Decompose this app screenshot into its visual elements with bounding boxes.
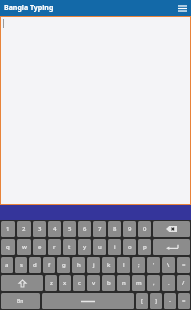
button[interactable]: u: [93, 239, 106, 255]
button[interactable]: j: [87, 257, 100, 273]
button[interactable]: 7: [93, 221, 106, 237]
staticText: e: [38, 243, 42, 251]
button[interactable]: ]: [150, 293, 162, 309]
staticText: =: [182, 261, 186, 269]
staticText: Bangla Typing: [4, 3, 54, 13]
button[interactable]: v: [87, 275, 100, 291]
button[interactable]: 9: [123, 221, 136, 237]
staticText: f: [48, 261, 51, 269]
button[interactable]: l: [117, 257, 130, 273]
button[interactable]: k: [102, 257, 115, 273]
staticText: x: [63, 279, 67, 287]
button[interactable]: -: [164, 293, 176, 309]
staticText: [: [141, 297, 143, 305]
button[interactable]: f: [43, 257, 55, 273]
staticText: 3: [38, 225, 42, 233]
staticText: y: [83, 243, 87, 251]
staticText: o: [128, 243, 132, 251]
staticText: w: [22, 243, 27, 251]
staticText: n: [122, 279, 126, 287]
staticText: \: [167, 261, 170, 269]
staticText: 2: [22, 225, 26, 233]
button[interactable]: =: [177, 257, 190, 273]
staticText: d: [33, 261, 37, 269]
button[interactable]: g: [57, 257, 70, 273]
button[interactable]: Backspace: [153, 221, 190, 237]
button[interactable]: Bn: [1, 293, 40, 309]
button[interactable]: a: [1, 257, 13, 273]
button[interactable]: 1: [1, 221, 15, 237]
button[interactable]: 5: [63, 221, 76, 237]
button[interactable]: 2: [17, 221, 31, 237]
button[interactable]: ;: [132, 257, 145, 273]
staticText: 8: [113, 225, 117, 233]
staticText: 4: [53, 225, 57, 233]
button[interactable]: 6: [78, 221, 91, 237]
staticText: 1: [6, 225, 10, 233]
staticText: ;: [138, 261, 140, 269]
staticText: v: [92, 279, 96, 287]
staticText: l: [123, 261, 125, 269]
button[interactable]: Menu: [178, 4, 187, 13]
staticText: b: [107, 279, 111, 287]
button[interactable]: Enter: [153, 239, 190, 255]
button[interactable]: w: [17, 239, 31, 255]
staticText: Bn: [17, 298, 24, 305]
button[interactable]: s: [15, 257, 27, 273]
staticText: k: [107, 261, 111, 269]
button[interactable]: /: [177, 275, 190, 291]
staticText: i: [114, 243, 116, 251]
button[interactable]: h: [72, 257, 85, 273]
button[interactable]: y: [78, 239, 91, 255]
button[interactable]: p: [138, 239, 151, 255]
button[interactable]: c: [73, 275, 85, 291]
staticText: j: [93, 261, 95, 269]
staticText: 5: [68, 225, 72, 233]
staticText: .: [168, 279, 170, 287]
button[interactable]: [0, 16, 191, 205]
button[interactable]: ,: [147, 275, 160, 291]
button[interactable]: q: [1, 239, 15, 255]
button[interactable]: 4: [48, 221, 61, 237]
button[interactable]: n: [117, 275, 130, 291]
staticText: s: [20, 261, 23, 269]
button[interactable]: z: [45, 275, 57, 291]
staticText: z: [50, 279, 53, 287]
button[interactable]: o: [123, 239, 136, 255]
button[interactable]: =: [178, 293, 190, 309]
staticText: -: [169, 297, 171, 305]
button[interactable]: .: [162, 275, 175, 291]
button[interactable]: 3: [33, 221, 46, 237]
staticText: r: [53, 243, 56, 251]
button[interactable]: x: [59, 275, 71, 291]
button[interactable]: \: [162, 257, 175, 273]
staticText: 0: [143, 225, 147, 233]
staticText: p: [143, 243, 147, 251]
button[interactable]: b: [102, 275, 115, 291]
button[interactable]: [: [136, 293, 148, 309]
staticText: g: [62, 261, 66, 269]
staticText: m: [136, 279, 142, 287]
staticText: 9: [128, 225, 132, 233]
staticText: q: [6, 243, 10, 251]
button[interactable]: 8: [108, 221, 121, 237]
button[interactable]: d: [29, 257, 41, 273]
button[interactable]: ': [147, 257, 160, 273]
staticText: t: [68, 243, 71, 251]
button[interactable]: m: [132, 275, 145, 291]
staticText: u: [98, 243, 102, 251]
button[interactable]: r: [48, 239, 61, 255]
button[interactable]: e: [33, 239, 46, 255]
button[interactable]: 0: [138, 221, 151, 237]
button[interactable]: Shift: [1, 275, 43, 291]
staticText: /: [182, 279, 185, 287]
staticText: h: [77, 261, 81, 269]
staticText: ]: [155, 297, 157, 305]
staticText: a: [5, 261, 9, 269]
button[interactable]: Space: [42, 293, 134, 309]
staticText: ': [153, 261, 155, 269]
button[interactable]: i: [108, 239, 121, 255]
button[interactable]: t: [63, 239, 76, 255]
staticText: c: [78, 279, 81, 287]
